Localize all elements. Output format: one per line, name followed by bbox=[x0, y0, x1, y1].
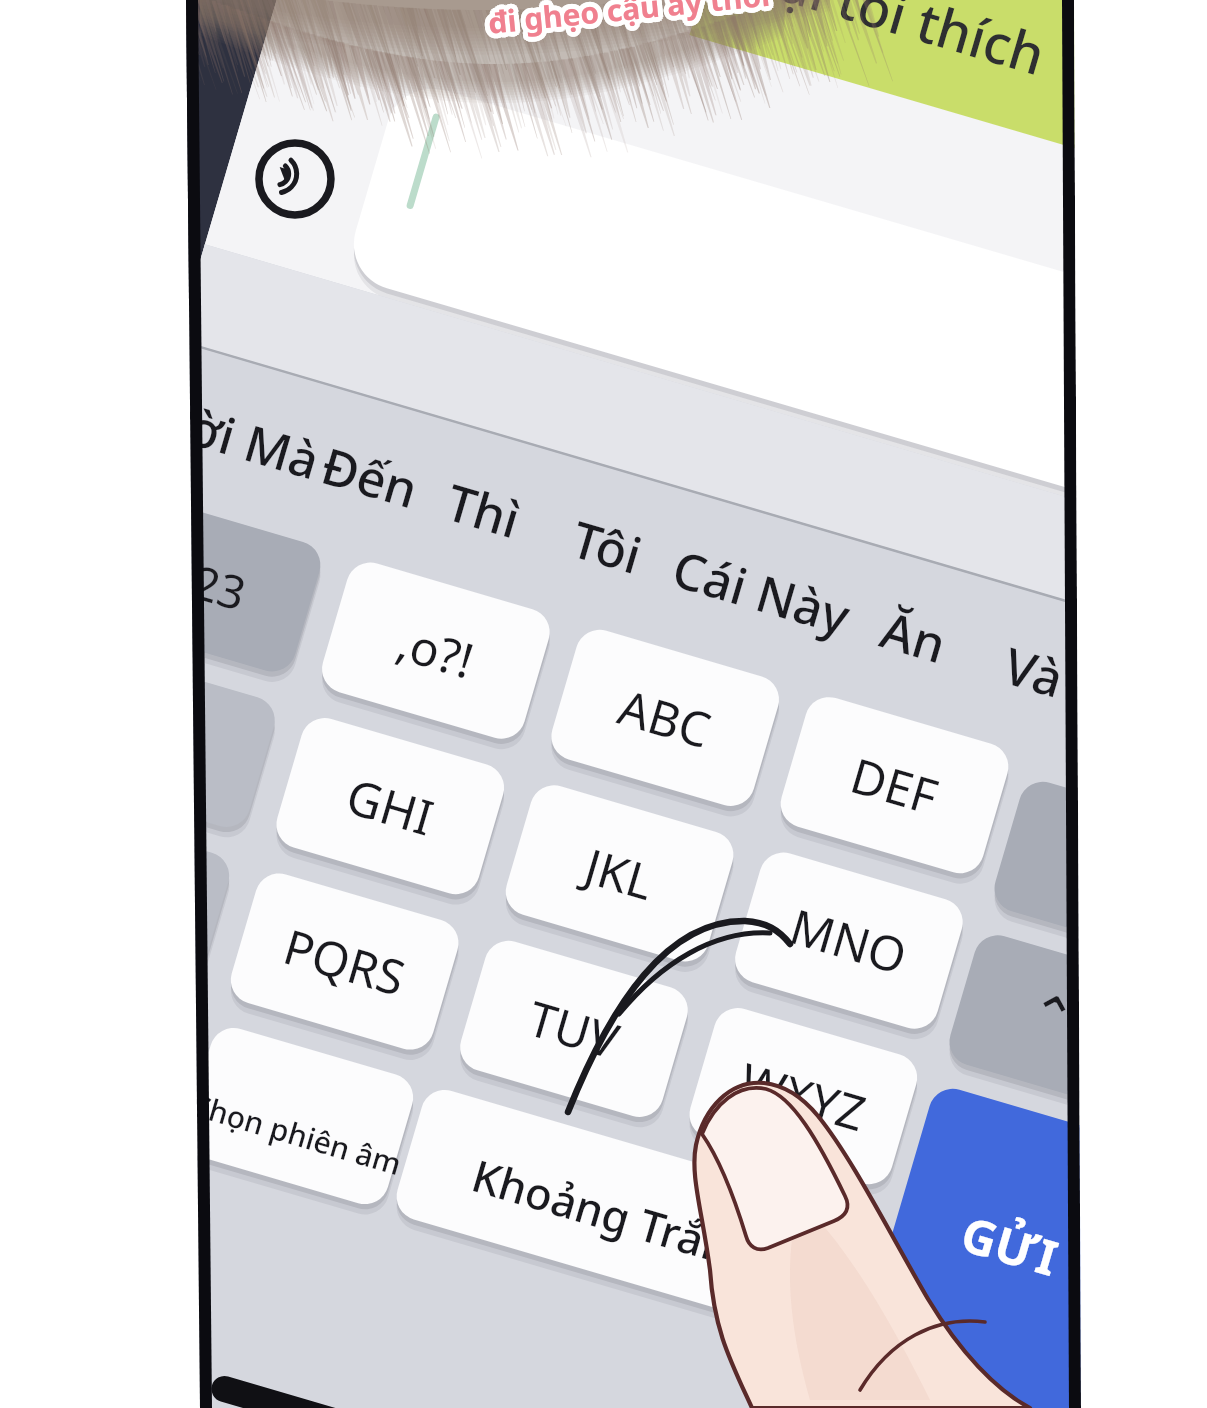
button[interactable]: Comic panel: a finger typing on a phone … bbox=[0, 0, 1207, 1408]
